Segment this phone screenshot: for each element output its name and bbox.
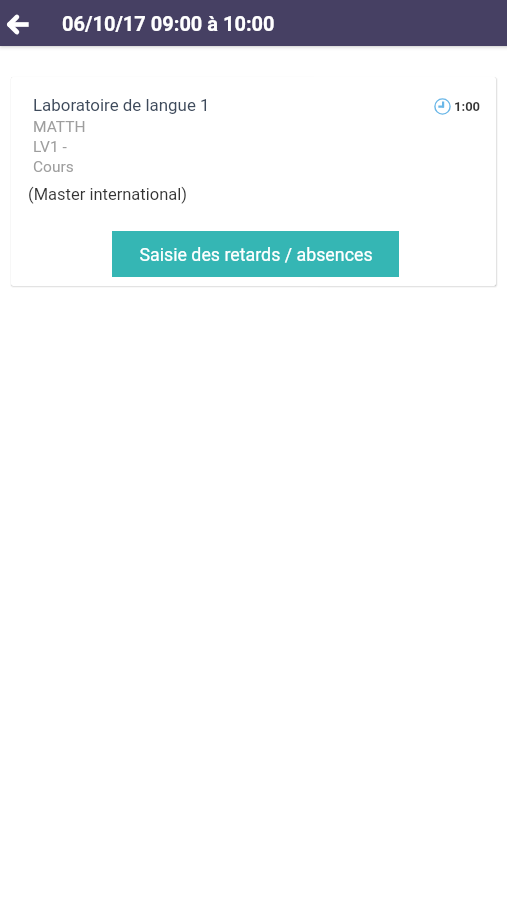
staticText: Laboratoire de langue 1 [33,95,210,115]
staticText: Cours [33,158,74,176]
staticText: 1:00 [454,99,481,114]
staticText: (Master international) [28,185,187,204]
staticText: Saisie des retards / absences [139,244,373,265]
button[interactable]: Back [0,0,36,46]
staticText: LV1 - [33,138,67,156]
button[interactable]: Saisie des retards / absences [112,231,399,277]
staticText: 06/10/17 09:00 à 10:00 [62,12,275,35]
staticText: MATTH [33,118,86,136]
